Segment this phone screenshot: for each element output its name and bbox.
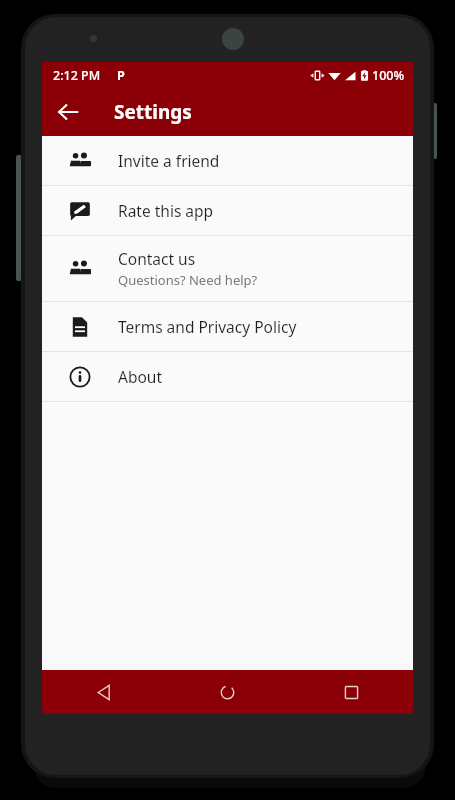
button[interactable]: Rate this app [42,186,413,235]
staticText: Contact us [118,248,196,269]
staticText: 2:12 PM [53,67,101,84]
button[interactable]: Back [42,670,165,714]
button[interactable]: Invite a friend [42,136,413,185]
button[interactable]: About [42,352,413,401]
staticText: Settings [114,99,192,125]
staticText: Terms and Privacy Policy [118,316,297,337]
button[interactable]: Terms and Privacy Policy [42,302,413,351]
button[interactable]: Back [48,92,88,132]
button[interactable]: Contact us [42,236,413,301]
staticText: Rate this app [118,200,214,221]
button[interactable]: Home [165,670,289,714]
staticText: 100% [372,67,405,84]
staticText: P [117,67,125,84]
button[interactable]: Recents [289,670,413,714]
staticText: Invite a friend [118,150,220,171]
staticText: About [118,366,162,387]
staticText: Questions? Need help? [118,271,258,289]
